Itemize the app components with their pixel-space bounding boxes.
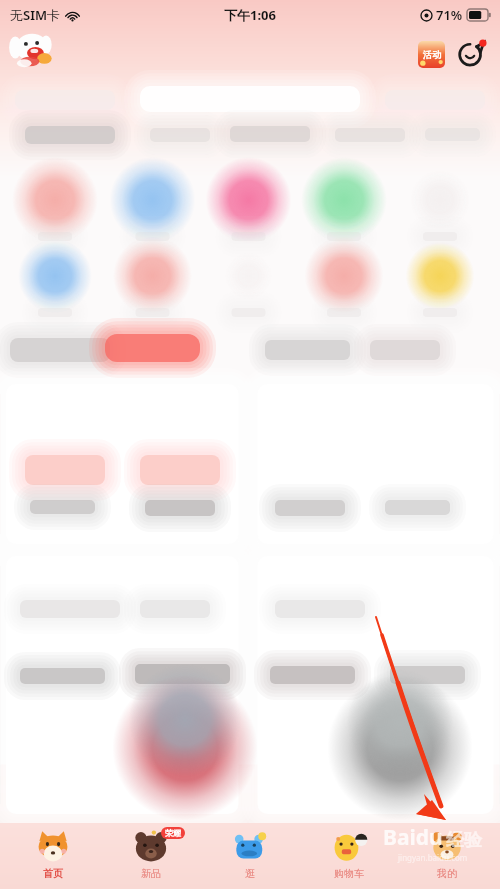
button[interactable]: 我的 <box>401 823 493 889</box>
button[interactable]: 京东 Logo <box>8 32 64 76</box>
staticText: 购物车 <box>334 867 364 880</box>
button[interactable]: 活动 <box>418 41 445 68</box>
staticText: 新品 <box>141 867 161 880</box>
staticText: 逛 <box>245 867 255 880</box>
staticText: 荣耀 <box>165 828 181 838</box>
button[interactable]: 购物车 <box>303 823 395 889</box>
staticText: 71% <box>436 6 463 24</box>
staticText: 活动 <box>423 49 441 60</box>
staticText: jingyan.baidu.com <box>398 852 468 863</box>
button[interactable]: 逛 <box>204 823 296 889</box>
staticText: 我的 <box>437 867 457 880</box>
staticText: 经验 <box>446 829 482 852</box>
staticText: Baidu <box>383 823 443 852</box>
staticText: 首页 <box>43 867 63 880</box>
button[interactable]: 荣耀 <box>105 823 197 889</box>
staticText: 无SIM卡 <box>10 6 61 24</box>
button[interactable]: 首页 <box>7 823 99 889</box>
staticText: 下午1:06 <box>224 6 276 24</box>
button[interactable]: 消息 <box>456 38 488 70</box>
